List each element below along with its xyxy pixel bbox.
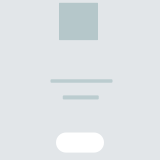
- button[interactable]: Continue: [56, 132, 104, 153]
